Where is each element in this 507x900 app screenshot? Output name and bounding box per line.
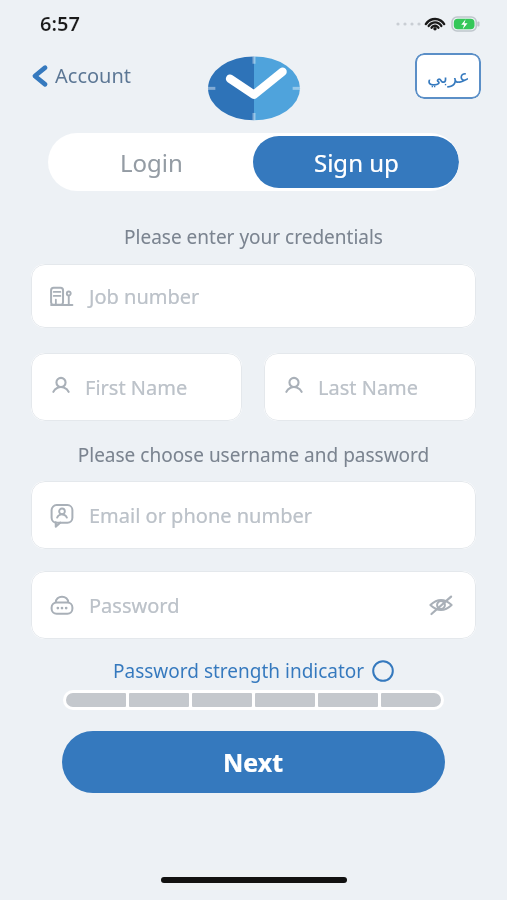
staticText: عربي: [427, 65, 470, 87]
staticText: Account: [55, 62, 132, 89]
button[interactable]: Password: [31, 571, 476, 639]
staticText: Login: [120, 146, 183, 179]
staticText: Email or phone number: [89, 502, 312, 529]
button[interactable]: عربي: [415, 53, 481, 99]
button[interactable]: Show password: [424, 588, 458, 622]
button[interactable]: Job number: [31, 264, 476, 328]
button[interactable]: Password strength indicator: [109, 658, 398, 684]
staticText: 6:57: [40, 10, 80, 37]
button[interactable]: Sign up: [253, 136, 459, 188]
staticText: Please choose username and password: [16, 442, 491, 468]
button[interactable]: First Name: [31, 353, 242, 421]
staticText: Password: [89, 592, 180, 619]
staticText: Sign up: [314, 146, 399, 179]
button[interactable]: Next: [62, 731, 445, 793]
button[interactable]: Login: [48, 133, 254, 191]
staticText: Please enter your credentials: [16, 224, 491, 250]
staticText: Password strength indicator: [113, 658, 365, 684]
staticText: Next: [223, 745, 284, 779]
staticText: Last Name: [318, 374, 419, 401]
staticText: Job number: [89, 283, 200, 310]
button[interactable]: Email or phone number: [31, 481, 476, 549]
button[interactable]: Last Name: [264, 353, 476, 421]
button[interactable]: Account: [28, 58, 136, 93]
staticText: First Name: [85, 374, 188, 401]
